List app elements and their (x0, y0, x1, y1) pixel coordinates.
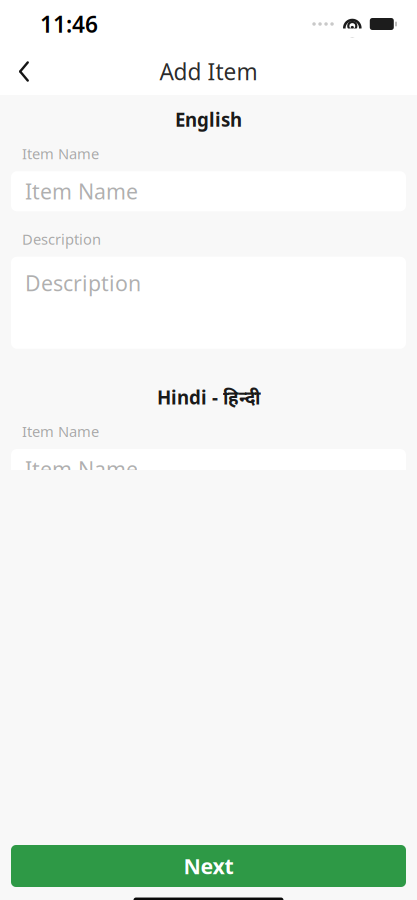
staticText: Hindi - हिन्दी (157, 385, 260, 409)
button[interactable]: Next (11, 845, 406, 887)
button[interactable]: Back (2, 49, 46, 93)
button[interactable]: Item Name (11, 449, 406, 489)
button[interactable]: Item Name (11, 171, 406, 211)
staticText: Item Name (25, 455, 138, 483)
staticText: English (175, 107, 242, 132)
staticText: Item Name (22, 421, 99, 441)
button[interactable]: Description (11, 257, 406, 349)
staticText: 11:46 (40, 9, 98, 39)
staticText: Next (183, 852, 233, 880)
staticText: Item Name (22, 144, 99, 163)
staticText: Add Item (159, 56, 257, 86)
staticText: Description (22, 229, 101, 249)
staticText: Item Name (25, 177, 138, 205)
staticText: Description (25, 269, 141, 297)
